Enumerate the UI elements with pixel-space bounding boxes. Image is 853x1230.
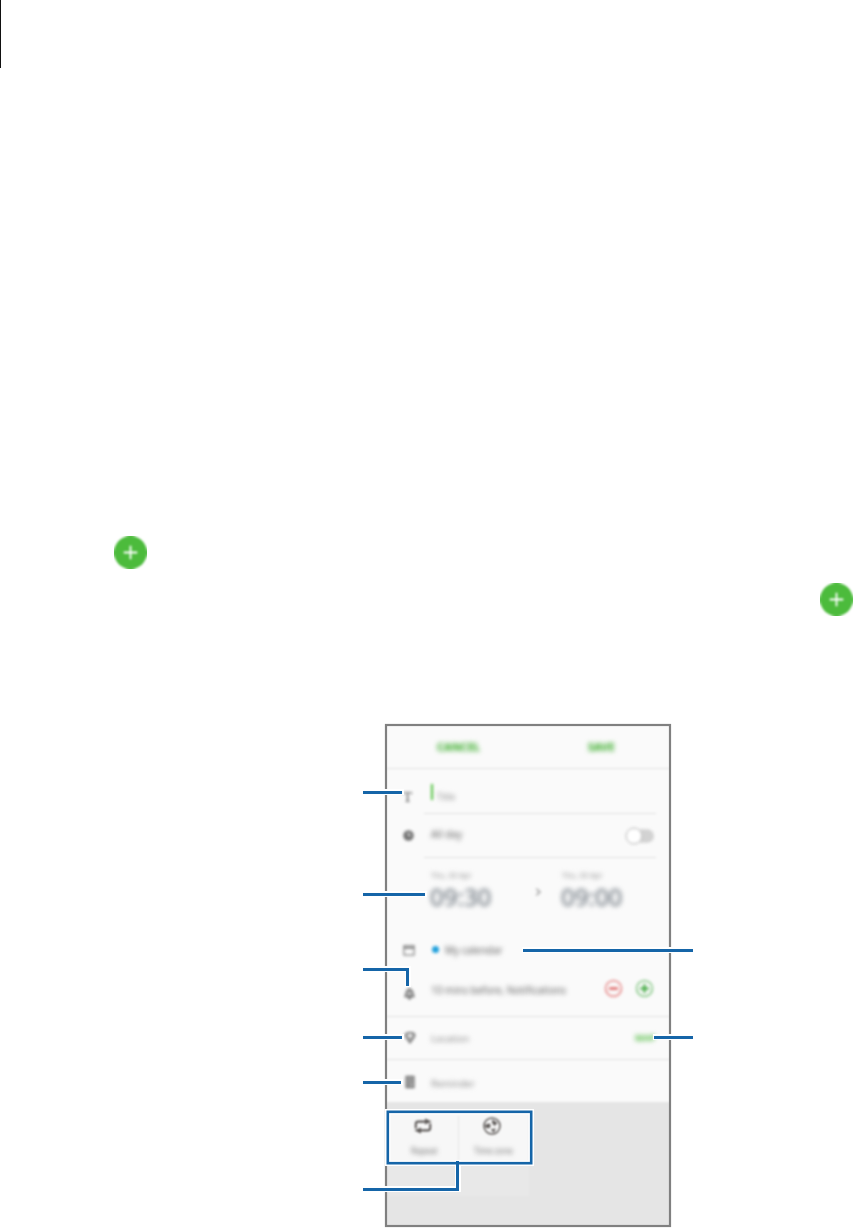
staticText: Thu, 30 Apr [431, 870, 472, 880]
staticText: 09:30 [430, 880, 492, 913]
button[interactable]: Add [820, 583, 853, 616]
button[interactable] [385, 1109, 534, 1166]
button[interactable]: Add [114, 536, 147, 569]
button[interactable]: Add reminder [635, 979, 654, 998]
staticText: 09:00 [561, 880, 623, 913]
staticText: All day [431, 827, 463, 841]
staticText: Reminder [431, 1077, 475, 1090]
button[interactable]: CANCEL [430, 738, 486, 754]
button[interactable]: SAVE [581, 738, 621, 754]
staticText: Time zone [474, 1145, 513, 1156]
button[interactable]: Time zone [459, 1112, 528, 1164]
staticText: T [403, 786, 413, 802]
staticText: SAVE [588, 739, 615, 754]
button[interactable]: Remove reminder [604, 979, 623, 998]
staticText: Thu, 30 Apr [562, 870, 603, 880]
button[interactable]: Repeat [390, 1112, 458, 1164]
staticText: Location [431, 1032, 470, 1045]
staticText: CANCEL [437, 739, 480, 754]
button[interactable]: All day toggle [625, 827, 654, 845]
button[interactable]: MAP [630, 1030, 660, 1044]
staticText: 10 mins before, Notifications [431, 983, 567, 997]
staticText: My calendar [445, 943, 503, 957]
staticText: Repeat [411, 1145, 438, 1156]
staticText: Title [437, 790, 455, 802]
staticText: MAP [635, 1031, 656, 1043]
